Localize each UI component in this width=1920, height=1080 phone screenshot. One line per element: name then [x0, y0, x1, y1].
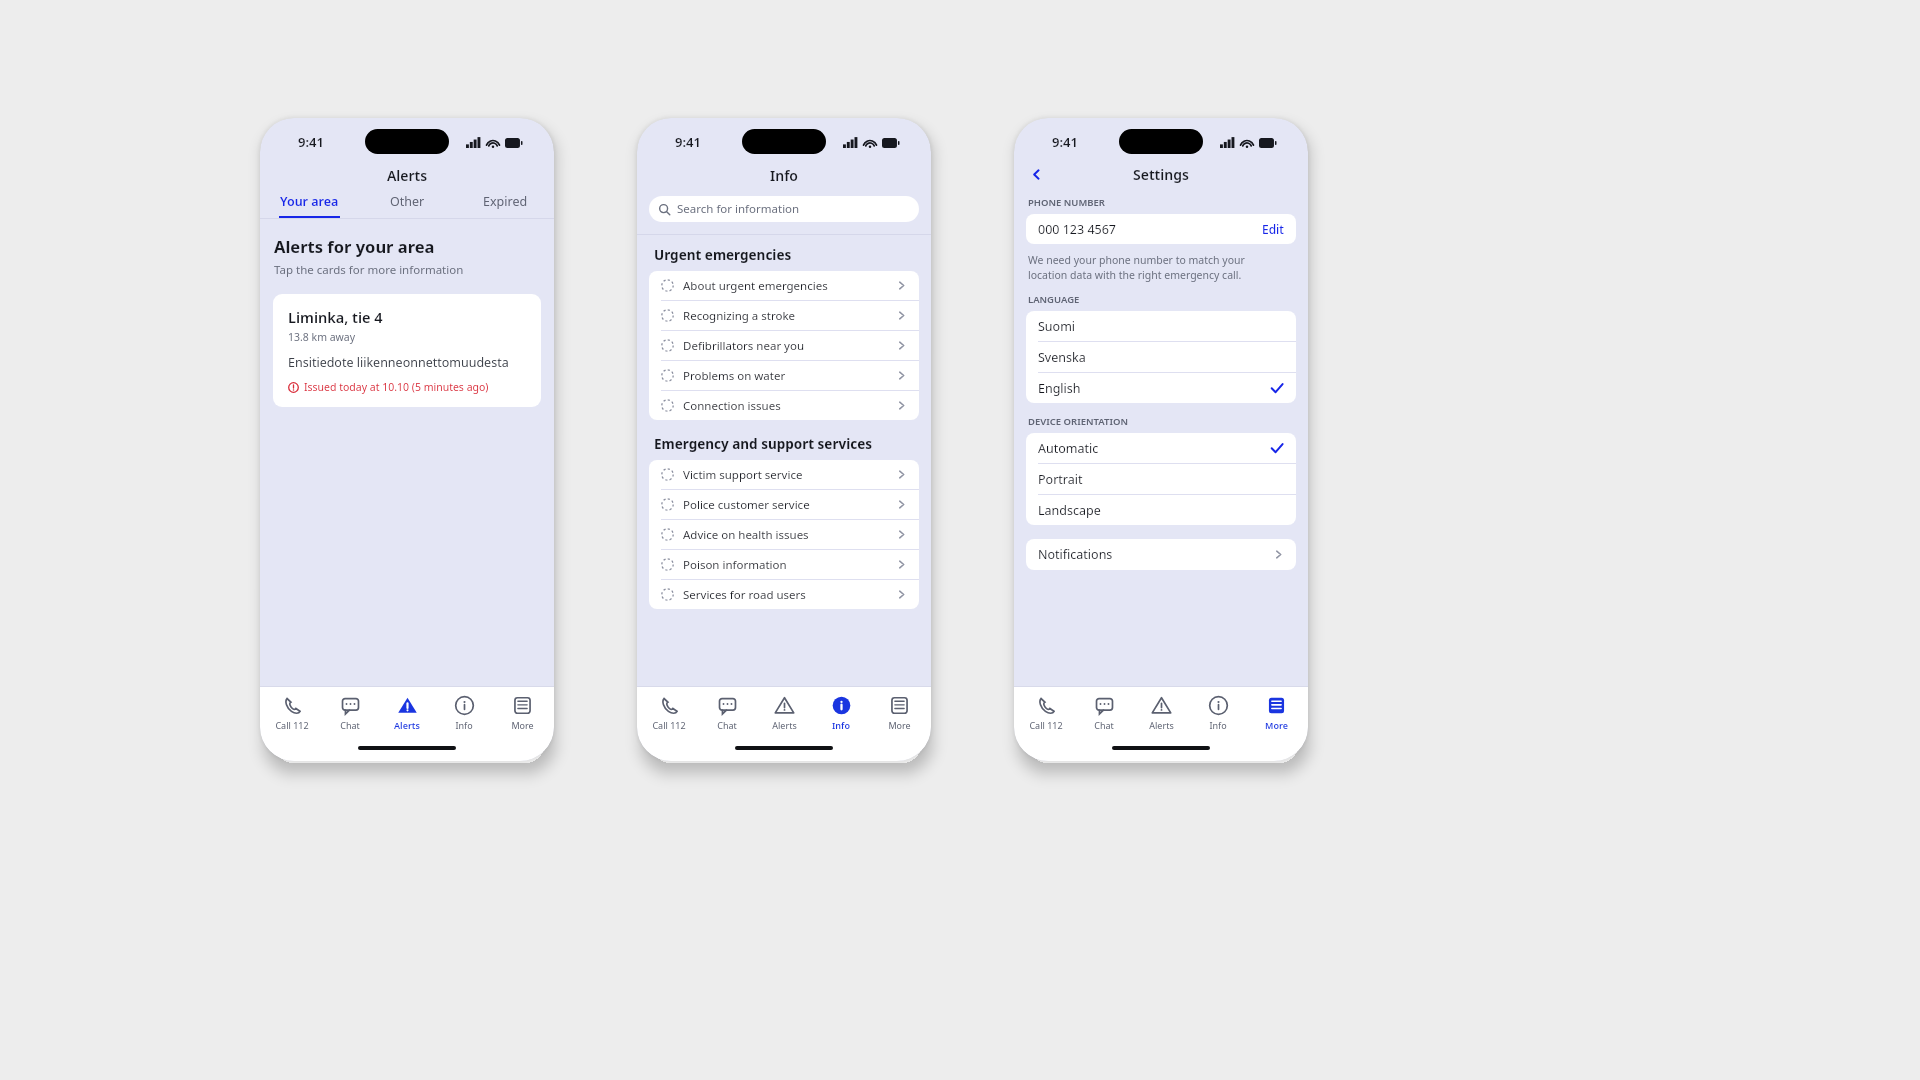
staticText: Call 112 [1029, 719, 1063, 731]
staticText: Tap the cards for more information [274, 262, 464, 278]
staticText: 000 123 4567 [1038, 221, 1117, 238]
staticText: Alerts [1149, 719, 1174, 731]
staticText: Alerts for your area [274, 235, 435, 257]
staticText: Call 112 [652, 719, 686, 731]
button[interactable]: More [497, 692, 547, 734]
staticText: Call 112 [275, 719, 309, 731]
staticText: Portrait [1038, 471, 1083, 488]
staticText: Issued today at 10.10 (5 minutes ago) [304, 380, 489, 394]
staticText: Search for information [677, 201, 800, 217]
button[interactable]: Recognizing a stroke [649, 301, 919, 330]
button[interactable]: More [874, 692, 924, 734]
staticText: Info [455, 719, 473, 731]
button[interactable]: Expired [456, 193, 554, 218]
button[interactable]: Call 112 [267, 692, 317, 734]
button[interactable]: Chat [1079, 692, 1129, 734]
staticText: Services for road users [683, 587, 806, 603]
staticText: Poison information [683, 557, 787, 573]
button[interactable]: Back [1024, 162, 1048, 186]
button[interactable]: English [1026, 373, 1296, 403]
staticText: English [1038, 380, 1081, 397]
staticText: Svenska [1038, 349, 1086, 366]
button[interactable]: Info [1193, 692, 1243, 734]
staticText: 9:41 [675, 133, 701, 151]
staticText: Problems on water [683, 368, 786, 384]
staticText: About urgent emergencies [683, 278, 828, 294]
staticText: We need your phone number to match your … [1028, 253, 1245, 282]
button[interactable]: Call 112 [1021, 692, 1071, 734]
staticText: Settings [1133, 165, 1189, 184]
button[interactable]: Connection issues [649, 391, 919, 420]
staticText: Notifications [1038, 546, 1113, 563]
button[interactable]: Edit [1262, 221, 1284, 237]
staticText: Liminka, tie 4 [288, 307, 383, 327]
button[interactable]: Defibrillators near you [649, 331, 919, 360]
button[interactable]: Other [358, 193, 456, 218]
staticText: Recognizing a stroke [683, 308, 796, 324]
button[interactable]: Victim support service [649, 460, 919, 489]
staticText: Chat [717, 719, 737, 731]
staticText: Alerts [260, 166, 554, 185]
staticText: PHONE NUMBER [1028, 196, 1105, 209]
button[interactable]: Portrait [1026, 464, 1296, 494]
button[interactable]: Your area [260, 193, 358, 218]
button[interactable]: Alerts [1136, 692, 1186, 734]
button[interactable]: Liminka, tie 4 [273, 294, 541, 407]
button[interactable]: Svenska [1026, 342, 1296, 372]
staticText: Victim support service [683, 467, 803, 483]
staticText: 13.8 km away [288, 330, 356, 344]
button[interactable]: Search for information [649, 196, 919, 222]
staticText: 9:41 [298, 133, 324, 151]
staticText: Automatic [1038, 440, 1099, 457]
button[interactable]: Poison information [649, 550, 919, 579]
staticText: More [511, 719, 534, 731]
staticText: Edit [1262, 221, 1284, 237]
staticText: Advice on health issues [683, 527, 809, 543]
button[interactable]: More [1251, 692, 1301, 734]
staticText: Ensitiedote liikenneonnettomuudesta [288, 354, 509, 371]
staticText: Chat [1094, 719, 1114, 731]
staticText: More [1265, 719, 1288, 731]
button[interactable]: Notifications [1026, 539, 1296, 570]
button[interactable]: Suomi [1026, 311, 1296, 341]
staticText: Chat [340, 719, 360, 731]
staticText: More [888, 719, 911, 731]
staticText: Emergency and support services [654, 435, 873, 453]
staticText: Expired [483, 193, 528, 210]
staticText: Alerts [394, 719, 420, 731]
button[interactable]: Automatic [1026, 433, 1296, 463]
button[interactable]: Chat [325, 692, 375, 734]
button[interactable]: Problems on water [649, 361, 919, 390]
staticText: 9:41 [1052, 133, 1078, 151]
button[interactable]: Services for road users [649, 580, 919, 609]
staticText: Defibrillators near you [683, 338, 805, 354]
staticText: DEVICE ORIENTATION [1028, 415, 1128, 428]
staticText: LANGUAGE [1028, 293, 1080, 306]
button[interactable]: Landscape [1026, 495, 1296, 525]
button[interactable]: Police customer service [649, 490, 919, 519]
button[interactable]: Alerts [382, 692, 432, 734]
staticText: Your area [280, 193, 339, 210]
button[interactable]: Info [816, 692, 866, 734]
staticText: Info [832, 719, 850, 731]
button[interactable]: Call 112 [644, 692, 694, 734]
staticText: Suomi [1038, 318, 1076, 335]
staticText: Connection issues [683, 398, 781, 414]
staticText: Landscape [1038, 502, 1101, 519]
button[interactable]: Chat [702, 692, 752, 734]
staticText: Police customer service [683, 497, 810, 513]
staticText: Info [637, 166, 931, 185]
staticText: Urgent emergencies [654, 246, 792, 264]
button[interactable]: Alerts [759, 692, 809, 734]
button[interactable]: Info [439, 692, 489, 734]
staticText: Info [1209, 719, 1227, 731]
button[interactable]: About urgent emergencies [649, 271, 919, 300]
button[interactable]: Advice on health issues [649, 520, 919, 549]
staticText: Other [390, 193, 425, 210]
staticText: Alerts [772, 719, 797, 731]
